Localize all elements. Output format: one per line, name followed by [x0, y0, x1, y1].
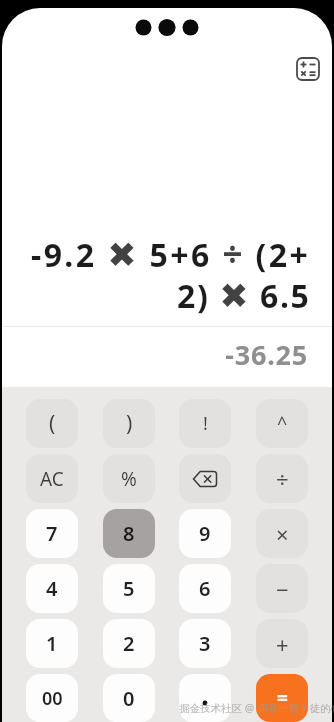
button[interactable]: 7	[26, 509, 78, 558]
button[interactable]: ^	[256, 399, 308, 448]
button[interactable]: −	[256, 564, 308, 613]
staticText: =	[277, 685, 288, 711]
button[interactable]: 4	[26, 564, 78, 613]
button[interactable]: 00	[26, 674, 78, 722]
button[interactable]: 9	[179, 509, 231, 558]
staticText: 9	[199, 520, 211, 547]
button[interactable]: %	[103, 454, 155, 503]
button[interactable]: =	[256, 674, 308, 722]
staticText: -9.2 ✖ 5+6 ÷ (2+	[31, 230, 311, 278]
button[interactable]: !	[179, 399, 231, 448]
staticText: 3	[199, 630, 211, 657]
staticText: 7	[46, 520, 58, 547]
staticText: +	[276, 629, 289, 659]
button[interactable]: 6	[179, 564, 231, 613]
staticText: 8	[123, 520, 135, 547]
button[interactable]: 2	[103, 619, 155, 668]
button[interactable]: (	[26, 399, 78, 448]
staticText: AC	[40, 466, 64, 492]
button[interactable]: 5	[103, 564, 155, 613]
staticText: 2	[123, 630, 135, 657]
staticText: 00	[42, 686, 63, 711]
staticText: (	[49, 409, 56, 438]
staticText: -36.25	[0, 336, 308, 373]
button[interactable]: )	[103, 399, 155, 448]
staticText: ^	[277, 411, 288, 436]
staticText: )	[126, 409, 133, 438]
staticText: 掘金技术社区 @ 拥有一颗学徒的心	[179, 701, 334, 715]
staticText: %	[121, 466, 137, 492]
staticText: 2) ✖ 6.5	[177, 274, 311, 318]
button[interactable]: AC	[26, 454, 78, 503]
button[interactable]: +	[256, 619, 308, 668]
staticText: ×	[276, 519, 289, 549]
button[interactable]: 0	[103, 674, 155, 722]
staticText: 6	[199, 575, 211, 602]
staticText: 0	[123, 685, 135, 712]
button[interactable]	[179, 454, 231, 503]
button[interactable]: ÷	[256, 454, 308, 503]
button[interactable]: 3	[179, 619, 231, 668]
button[interactable]: 8	[103, 509, 155, 558]
button[interactable]: 1	[26, 619, 78, 668]
staticText: −	[276, 574, 289, 604]
staticText: ÷	[276, 464, 289, 494]
button[interactable]	[292, 53, 324, 85]
staticText: 4	[46, 575, 58, 602]
staticText: !	[203, 411, 208, 436]
staticText: 1	[46, 630, 58, 657]
button[interactable]	[179, 674, 231, 722]
staticText: 5	[123, 575, 135, 602]
button[interactable]: ×	[256, 509, 308, 558]
